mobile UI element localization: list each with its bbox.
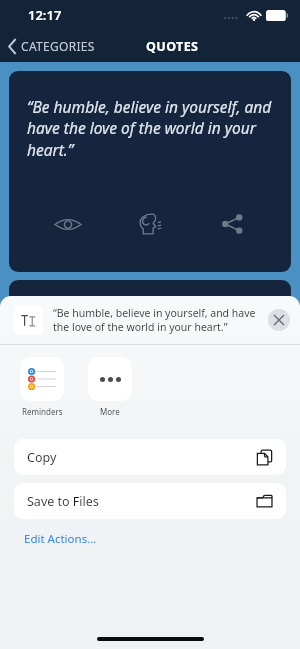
button[interactable]: CATEGORIES — [0, 34, 103, 58]
button[interactable]: View — [45, 201, 91, 247]
button[interactable]: More — [82, 357, 138, 417]
button[interactable]: “Be humble, believe in yourself, and hav… — [9, 71, 291, 272]
staticText: 12:17 — [28, 6, 62, 24]
staticText: CATEGORIES — [21, 38, 95, 54]
staticText: More — [100, 406, 120, 417]
button[interactable]: Copy — [14, 439, 286, 475]
button[interactable]: “Be humble, believe in yourself, and hav… — [0, 296, 300, 344]
staticText: Reminders — [22, 406, 63, 417]
button[interactable]: Reminders — [14, 357, 70, 417]
staticText: “Be humble, believe in yourself, and hav… — [27, 96, 275, 161]
staticText: QUOTES — [146, 38, 199, 55]
button[interactable]: Share — [209, 201, 255, 247]
button[interactable]: Close — [268, 309, 290, 331]
button[interactable]: Save to Files — [14, 483, 286, 519]
button[interactable]: Speak — [127, 201, 173, 247]
staticText: “Be humble, believe in yourself, and hav… — [53, 306, 260, 334]
button[interactable]: Edit Actions… — [24, 531, 97, 547]
staticText: Save to Files — [27, 493, 256, 510]
staticText: Copy — [27, 449, 256, 466]
